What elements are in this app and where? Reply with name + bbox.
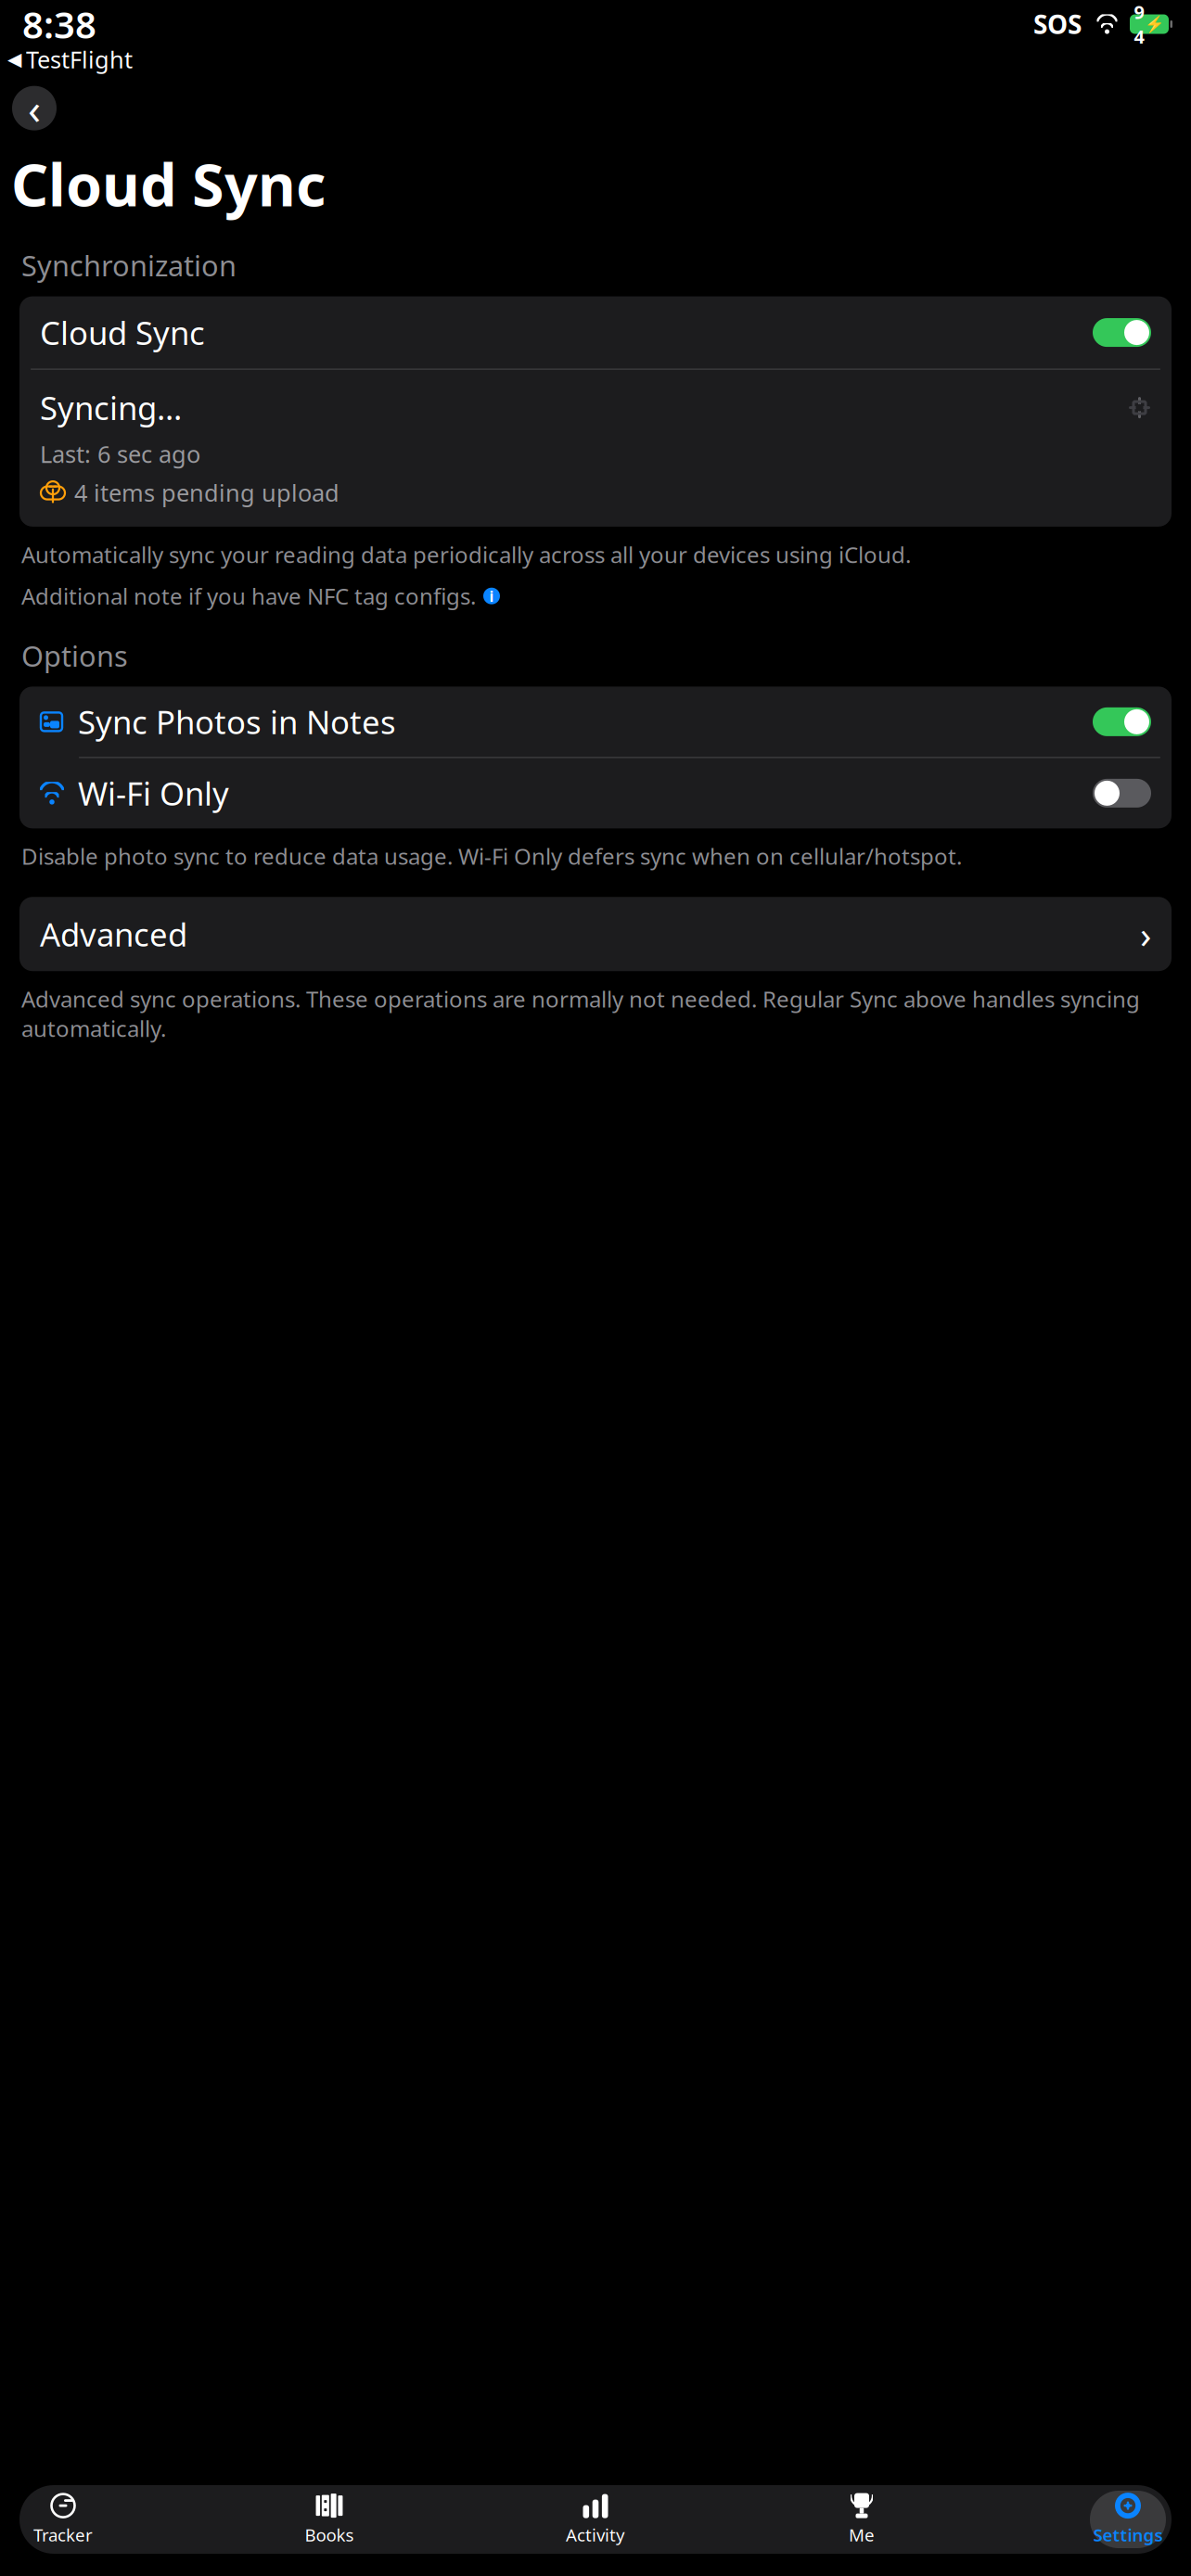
- staticText: Me: [849, 2523, 875, 2546]
- staticText: Options: [21, 637, 128, 674]
- button[interactable]: Cloud Sync: [19, 296, 1172, 369]
- staticText: 94: [1134, 0, 1144, 49]
- staticText: Settings: [1093, 2523, 1163, 2546]
- button[interactable]: Activity: [557, 2491, 634, 2548]
- staticText: Cloud Sync: [11, 145, 326, 222]
- staticText: Books: [305, 2523, 354, 2546]
- staticText: Advanced: [40, 913, 187, 955]
- staticText: 4 items pending upload: [74, 477, 339, 508]
- staticText: 8:38: [22, 0, 96, 49]
- staticText: Additional note if you have NFC tag conf…: [21, 581, 476, 611]
- button[interactable]: Tracker: [25, 2491, 101, 2548]
- staticText: ◀: [7, 49, 21, 70]
- button[interactable]: Sync Photos in Notes: [19, 687, 1172, 757]
- button[interactable]: Back: [12, 86, 57, 130]
- staticText: Cloud Sync: [40, 311, 205, 354]
- staticText: Automatically sync your reading data per…: [21, 540, 911, 569]
- staticText: Advanced sync operations. These operatio…: [21, 984, 1140, 1043]
- button[interactable]: More information: [483, 588, 500, 604]
- staticText: Activity: [566, 2523, 625, 2546]
- staticText: ‹: [28, 80, 41, 136]
- staticText: ⚡: [1144, 15, 1165, 33]
- staticText: i: [489, 586, 494, 606]
- staticText: Wi-Fi Only: [78, 772, 229, 815]
- button[interactable]: Advanced: [19, 897, 1172, 971]
- button[interactable]: Me: [824, 2491, 900, 2548]
- staticText: Sync Photos in Notes: [78, 700, 396, 743]
- button[interactable]: Settings: [1090, 2491, 1166, 2548]
- staticText: Syncing...: [40, 386, 182, 429]
- staticText: Disable photo sync to reduce data usage.…: [21, 841, 962, 871]
- staticText: Last: 6 sec ago: [40, 438, 200, 469]
- staticText: SOS: [1033, 7, 1082, 41]
- button[interactable]: Books: [291, 2491, 367, 2548]
- staticText: TestFlight: [26, 44, 133, 75]
- staticText: Synchronization: [21, 247, 237, 284]
- staticText: Tracker: [33, 2523, 93, 2546]
- staticText: ›: [1140, 909, 1151, 959]
- button[interactable]: Wi-Fi Only: [19, 758, 1172, 828]
